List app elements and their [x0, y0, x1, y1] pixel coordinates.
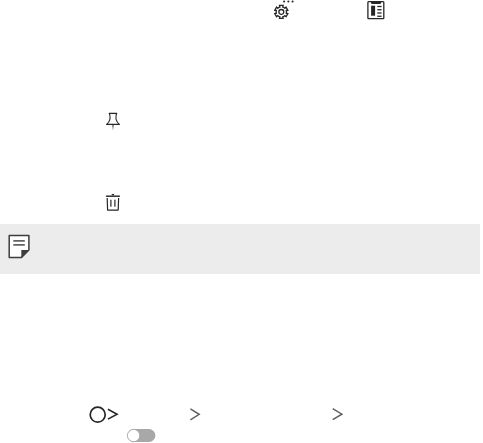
button[interactable]: Open details — [327, 403, 347, 427]
button[interactable]: Notes list — [365, 0, 387, 22]
button[interactable]: Choose colour — [86, 403, 120, 427]
button[interactable]: Toggle — [126, 428, 157, 443]
button[interactable]: Settings — [270, 0, 300, 24]
button[interactable]: Pin — [103, 111, 124, 132]
button[interactable]: Delete — [103, 192, 124, 213]
button[interactable] — [0, 224, 480, 274]
button[interactable]: Open — [185, 403, 205, 427]
